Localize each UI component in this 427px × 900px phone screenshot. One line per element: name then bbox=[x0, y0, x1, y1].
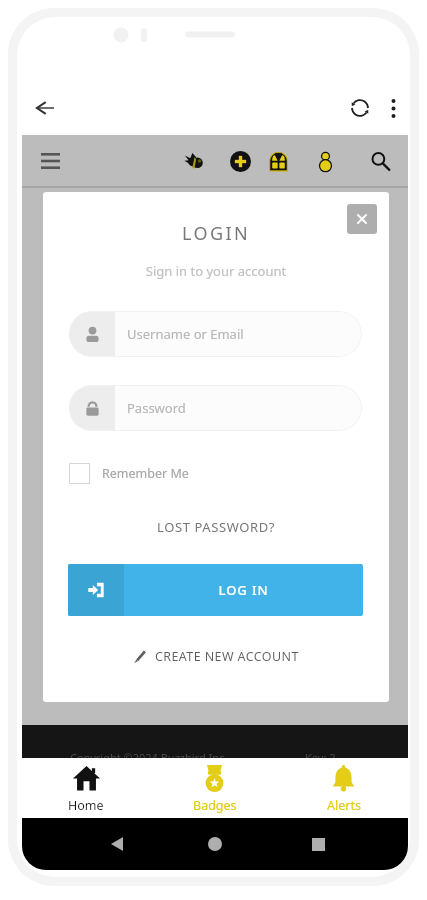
button[interactable]: Password bbox=[69, 385, 362, 431]
button[interactable]: Close bbox=[347, 204, 377, 234]
button[interactable]: Back bbox=[97, 824, 137, 864]
button[interactable]: Search bbox=[363, 144, 397, 178]
button[interactable]: Profile bbox=[308, 144, 342, 178]
button[interactable]: Add bbox=[223, 144, 257, 178]
button[interactable]: Menu bbox=[32, 143, 68, 179]
staticText: Key: 2 bbox=[305, 750, 336, 765]
staticText: LOGIN bbox=[43, 221, 389, 246]
button[interactable]: Remember Me bbox=[69, 461, 189, 485]
staticText: Remember Me bbox=[102, 465, 189, 482]
button[interactable]: LOG IN bbox=[68, 564, 363, 616]
staticText: Sign in to your account bbox=[43, 262, 389, 280]
button[interactable]: Back bbox=[27, 90, 63, 126]
staticText: Password bbox=[127, 399, 186, 417]
button[interactable]: Badges bbox=[150, 758, 279, 818]
button[interactable]: More options bbox=[375, 90, 411, 126]
button[interactable]: Home bbox=[195, 824, 235, 864]
staticText: LOG IN bbox=[124, 581, 363, 599]
staticText: CREATE NEW ACCOUNT bbox=[155, 648, 299, 665]
staticText: Home bbox=[68, 797, 104, 814]
button[interactable]: Refresh bbox=[342, 90, 378, 126]
button[interactable]: Hive bbox=[261, 144, 295, 178]
staticText: Username or Email bbox=[127, 325, 244, 343]
button[interactable]: LOST PASSWORD? bbox=[43, 518, 389, 536]
button[interactable]: Username or Email bbox=[69, 311, 362, 357]
staticText: Badges bbox=[193, 797, 237, 814]
staticText: Copyright ©2024 Buzzbird Inc. bbox=[70, 750, 228, 765]
button[interactable]: CREATE NEW ACCOUNT bbox=[43, 644, 389, 668]
button[interactable]: Buzz bbox=[177, 144, 211, 178]
staticText: Alerts bbox=[327, 797, 361, 814]
button[interactable]: Home bbox=[22, 758, 150, 818]
button[interactable]: Alerts bbox=[279, 758, 408, 818]
button[interactable]: Recent apps bbox=[298, 824, 338, 864]
